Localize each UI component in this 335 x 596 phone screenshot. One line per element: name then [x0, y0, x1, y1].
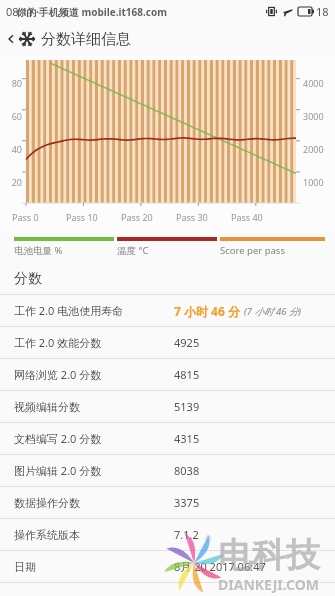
staticText: 8月 20 2017 06:47: [174, 559, 266, 574]
staticText: 你的·手机频道 mobile.it168.com: [16, 5, 167, 19]
button[interactable]: 工作 2.0 电池使用寿命: [0, 295, 335, 326]
button[interactable]: 图片编辑 2.0 分数: [0, 455, 335, 486]
staticText: 分数详细信息: [41, 30, 131, 49]
staticText: 网络浏览 2.0 分数: [14, 367, 102, 382]
staticText: 温度 °C: [117, 244, 149, 257]
staticText: DIANKEJI.COM: [218, 575, 320, 594]
staticText: 电科技: [218, 534, 320, 577]
staticText: 20: [6, 176, 22, 188]
staticText: 工作 2.0 效能分数: [14, 335, 102, 350]
staticText: 80: [6, 77, 22, 89]
staticText: 3000: [303, 110, 324, 122]
staticText: Pass 40: [231, 211, 263, 223]
staticText: 3375: [174, 495, 200, 510]
staticText: 5139: [174, 399, 200, 414]
staticText: (7 小时 46 分): [244, 305, 302, 318]
staticText: Score per pass: [220, 244, 285, 257]
staticText: Pass 20: [121, 211, 153, 223]
staticText: 4815: [174, 367, 200, 382]
staticText: 60: [6, 110, 22, 122]
button[interactable]: 文档编写 2.0 分数: [0, 423, 335, 454]
staticText: Pass 10: [66, 211, 98, 223]
staticText: 4925: [174, 335, 200, 350]
staticText: 4000: [303, 77, 324, 89]
button[interactable]: Back: [0, 22, 335, 56]
staticText: 2000: [303, 143, 324, 155]
button[interactable]: 视频编辑分数: [0, 391, 335, 422]
staticText: 日期: [14, 560, 36, 574]
button[interactable]: 操作系统版本: [0, 519, 335, 550]
staticText: 4315: [174, 431, 200, 446]
staticText: 文档编写 2.0 分数: [14, 431, 102, 446]
staticText: 数据操作分数: [14, 496, 80, 510]
staticText: Pass 0: [12, 211, 39, 223]
staticText: 7.1.2: [174, 527, 199, 542]
staticText: ®: [205, 533, 212, 544]
button[interactable]: 日期: [0, 551, 335, 582]
staticText: 1000: [303, 176, 324, 188]
staticText: 分数: [14, 270, 42, 288]
staticText: 08:11: [6, 4, 35, 19]
staticText: Pass 30: [176, 211, 208, 223]
button[interactable]: 数据操作分数: [0, 487, 335, 518]
staticText: 7 小时 46 分: [174, 303, 240, 319]
staticText: 图片编辑 2.0 分数: [14, 463, 102, 478]
staticText: 8038: [174, 463, 200, 478]
button[interactable]: 网络浏览 2.0 分数: [0, 359, 335, 390]
staticText: 40: [6, 143, 22, 155]
staticText: 18: [316, 4, 329, 19]
staticText: 操作系统版本: [14, 528, 80, 542]
staticText: 视频编辑分数: [14, 400, 80, 414]
staticText: 工作 2.0 电池使用寿命: [14, 303, 124, 318]
button[interactable]: 工作 2.0 效能分数: [0, 327, 335, 358]
staticText: 电池电量 %: [14, 244, 63, 257]
